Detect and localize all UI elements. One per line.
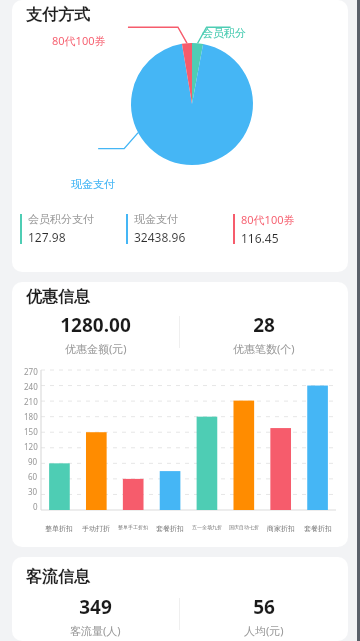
staticText: 人均(元) (244, 623, 284, 638)
staticText: 56 (253, 594, 275, 620)
staticText: 90 (28, 456, 38, 467)
staticText: 国庆自动七折 (229, 524, 259, 530)
staticText: 80代100券 (52, 33, 106, 48)
staticText: 28 (253, 312, 275, 338)
staticText: 优惠笔数(个) (233, 341, 295, 356)
button[interactable]: 支付方式 (12, 0, 348, 272)
staticText: 整单折扣 (45, 524, 73, 533)
staticText: 116.45 (241, 230, 279, 246)
button[interactable]: 28 (180, 312, 348, 356)
staticText: 270 (24, 366, 38, 377)
staticText: 127.98 (28, 229, 66, 245)
button[interactable]: 56 (180, 594, 348, 638)
staticText: 手动打折 (82, 524, 110, 533)
staticText: 五一全场九折 (192, 524, 222, 530)
staticText: 现金支付 (134, 212, 178, 226)
button[interactable]: 客流信息 (12, 557, 348, 641)
staticText: 支付方式 (26, 5, 90, 25)
staticText: 0 (33, 501, 38, 512)
staticText: 60 (28, 471, 38, 482)
staticText: 客流量(人) (70, 623, 121, 638)
staticText: 会员积分支付 (28, 212, 94, 226)
button[interactable]: 会员积分支付 (20, 212, 126, 245)
staticText: 32438.96 (134, 229, 186, 245)
staticText: 180 (24, 411, 38, 422)
staticText: 商家折扣 (267, 524, 295, 533)
button[interactable]: 349 (12, 594, 179, 638)
staticText: 80代100券 (241, 212, 295, 227)
staticText: 套餐折扣 (156, 524, 184, 533)
staticText: 120 (24, 441, 38, 452)
button[interactable]: 1280.00 (12, 312, 179, 356)
button[interactable]: 80代100券 (233, 212, 340, 246)
staticText: 1280.00 (60, 312, 131, 338)
staticText: 现金支付 (71, 177, 115, 191)
button[interactable]: 优惠信息 (12, 282, 348, 547)
staticText: 套餐折扣 (304, 524, 332, 533)
staticText: 150 (24, 426, 38, 437)
staticText: 会员积分 (202, 26, 246, 40)
staticText: 30 (28, 486, 38, 497)
staticText: 整单手工折扣 (118, 524, 148, 530)
staticText: 240 (24, 381, 38, 392)
button[interactable]: 现金支付 (126, 212, 233, 245)
staticText: 客流信息 (26, 567, 90, 587)
staticText: 优惠信息 (26, 287, 90, 307)
staticText: 210 (24, 396, 38, 407)
staticText: 349 (79, 594, 112, 620)
staticText: 优惠金额(元) (65, 341, 127, 356)
